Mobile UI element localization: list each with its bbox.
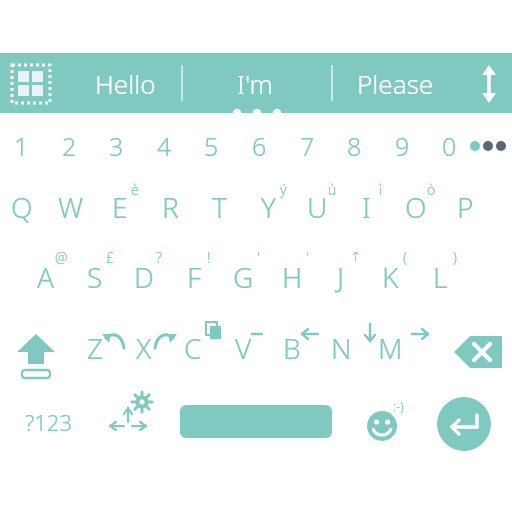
staticText: :-) bbox=[393, 397, 404, 415]
staticText: I bbox=[362, 188, 371, 226]
button[interactable]: N bbox=[317, 322, 365, 374]
button[interactable]: 3 bbox=[94, 126, 138, 166]
staticText: 9 bbox=[395, 129, 410, 163]
button[interactable]: K bbox=[366, 252, 414, 302]
button[interactable]: W bbox=[47, 182, 95, 232]
button[interactable]: O bbox=[392, 182, 440, 232]
button[interactable]: Space bbox=[180, 405, 332, 438]
staticText: ! bbox=[207, 248, 211, 267]
button[interactable]: P bbox=[441, 182, 489, 232]
button[interactable]: Enter bbox=[436, 396, 492, 452]
button[interactable]: 6 bbox=[237, 126, 281, 166]
staticText: ý bbox=[280, 180, 287, 199]
button[interactable]: 4 bbox=[142, 126, 186, 166]
button[interactable]: S bbox=[71, 252, 119, 302]
staticText: 7 bbox=[300, 129, 315, 163]
button[interactable]: C bbox=[169, 322, 217, 374]
staticText: ?123 bbox=[25, 407, 72, 437]
staticText: ( bbox=[403, 248, 407, 267]
staticText: Please bbox=[357, 66, 434, 101]
staticText: @ bbox=[55, 248, 68, 267]
staticText: U bbox=[307, 188, 328, 226]
button[interactable]: 5 bbox=[189, 126, 233, 166]
button[interactable]: B bbox=[268, 322, 316, 374]
staticText: L bbox=[433, 258, 448, 296]
button[interactable]: 8 bbox=[332, 126, 376, 166]
staticText: J bbox=[337, 258, 345, 296]
staticText: R bbox=[162, 188, 179, 226]
button[interactable]: 7 bbox=[285, 126, 329, 166]
button[interactable]: Emoji bbox=[360, 396, 412, 446]
staticText: W bbox=[58, 188, 84, 226]
button[interactable]: Settings bbox=[104, 392, 158, 448]
button[interactable]: J bbox=[317, 252, 365, 302]
button[interactable]: A bbox=[22, 252, 70, 302]
button[interactable]: E bbox=[96, 182, 144, 232]
staticText: ì bbox=[379, 180, 383, 199]
staticText: ? bbox=[156, 248, 162, 267]
staticText: 1 bbox=[14, 129, 29, 163]
staticText: D bbox=[134, 258, 154, 296]
staticText: 4 bbox=[157, 129, 172, 163]
staticText: £ bbox=[106, 248, 114, 267]
button[interactable]: 9 bbox=[380, 126, 424, 166]
button[interactable]: R bbox=[146, 182, 194, 232]
staticText: 6 bbox=[252, 129, 267, 163]
button[interactable]: Expand suggestions bbox=[466, 58, 512, 110]
button[interactable]: V bbox=[219, 322, 267, 374]
button[interactable]: More symbols bbox=[468, 128, 512, 164]
staticText: 8 bbox=[347, 129, 362, 163]
staticText: T bbox=[212, 188, 227, 226]
button[interactable]: D bbox=[120, 252, 168, 302]
button[interactable]: U bbox=[293, 182, 341, 232]
staticText: E bbox=[112, 188, 128, 226]
staticText: B bbox=[283, 329, 301, 367]
button[interactable]: Y bbox=[244, 182, 292, 232]
button[interactable]: ?123 bbox=[8, 398, 88, 446]
button[interactable]: Shift bbox=[8, 322, 64, 380]
staticText: ' bbox=[257, 248, 260, 267]
staticText: X bbox=[136, 329, 152, 367]
staticText: ' bbox=[306, 248, 309, 267]
button[interactable]: G bbox=[219, 252, 267, 302]
staticText: I'm bbox=[237, 66, 273, 101]
staticText: ) bbox=[453, 248, 457, 267]
staticText: G bbox=[233, 258, 254, 296]
staticText: Hello bbox=[95, 66, 156, 101]
staticText: M bbox=[378, 329, 403, 367]
button[interactable]: I bbox=[342, 182, 390, 232]
button[interactable]: 2 bbox=[47, 126, 91, 166]
staticText: C bbox=[184, 329, 202, 367]
staticText: è bbox=[131, 180, 139, 199]
button[interactable]: I'm bbox=[195, 53, 315, 113]
staticText: F bbox=[187, 258, 202, 296]
button[interactable]: H bbox=[268, 252, 316, 302]
button[interactable]: M bbox=[366, 322, 414, 374]
staticText: ù bbox=[328, 180, 337, 199]
staticText: Q bbox=[11, 188, 33, 226]
staticText: P bbox=[457, 188, 474, 226]
staticText: 5 bbox=[204, 129, 219, 163]
button[interactable]: Hello bbox=[70, 53, 180, 113]
button[interactable]: Keyboard layouts bbox=[10, 63, 52, 105]
staticText: 3 bbox=[109, 129, 124, 163]
button[interactable]: 0 bbox=[427, 126, 471, 166]
button[interactable]: L bbox=[416, 252, 464, 302]
staticText: V bbox=[235, 329, 252, 367]
staticText: N bbox=[331, 329, 352, 367]
button[interactable]: Z bbox=[71, 322, 119, 374]
button[interactable]: 1 bbox=[0, 126, 43, 166]
button[interactable]: Q bbox=[0, 182, 46, 232]
staticText: Z bbox=[87, 329, 104, 367]
staticText: 0 bbox=[442, 129, 457, 163]
staticText: ↑ bbox=[350, 249, 362, 265]
button[interactable]: Please bbox=[330, 53, 460, 113]
button[interactable]: F bbox=[170, 252, 218, 302]
staticText: ò bbox=[427, 180, 436, 199]
staticText: O bbox=[405, 188, 427, 226]
staticText: K bbox=[382, 258, 399, 296]
button[interactable]: X bbox=[120, 322, 168, 374]
button[interactable]: T bbox=[195, 182, 243, 232]
staticText: Y bbox=[261, 188, 276, 226]
button[interactable]: Backspace bbox=[452, 328, 508, 376]
